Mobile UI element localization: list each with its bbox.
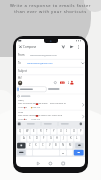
- staticText: C: [42, 143, 44, 147]
- staticText: U: [60, 129, 62, 133]
- staticText: 12:30 AM 12:30 AM: [18, 118, 41, 121]
- staticText: H: [56, 136, 58, 140]
- button[interactable]: [80, 61, 84, 65]
- button[interactable]: [17, 110, 84, 121]
- staticText: melissa.wyatt@gmail.com: [30, 54, 57, 57]
- staticText: Q: [19, 129, 22, 133]
- staticText: L: [76, 136, 78, 140]
- staticText: lauravidamu@gmail.com: [27, 62, 53, 65]
- staticText: Two quick reminders about our lunch and: [18, 114, 63, 117]
- staticText: I: [66, 129, 67, 133]
- button[interactable]: [69, 44, 75, 49]
- staticText: S: [29, 136, 31, 140]
- button[interactable]: [61, 44, 66, 49]
- staticText: Y: [53, 129, 55, 133]
- button[interactable]: [75, 143, 83, 149]
- staticText: F: [43, 136, 45, 140]
- button[interactable]: [17, 99, 84, 110]
- staticText: D: [36, 136, 38, 140]
- staticText: R: [40, 129, 42, 133]
- button[interactable]: [76, 44, 80, 49]
- staticText: Compose: [23, 45, 37, 49]
- staticText: B: [55, 143, 57, 147]
- staticText: N: [62, 143, 64, 147]
- staticText: G: [50, 136, 52, 140]
- staticText: Subject: [18, 69, 27, 73]
- button[interactable]: [33, 150, 59, 156]
- staticText: From: [18, 53, 25, 57]
- staticText: W: [26, 129, 29, 133]
- staticText: Was scrolling and saw these and thought …: [18, 102, 66, 105]
- staticText: T: [46, 129, 48, 133]
- staticText: X: [35, 143, 37, 147]
- button[interactable]: [35, 161, 41, 167]
- button[interactable]: [18, 44, 23, 49]
- staticText: Write a response to emails faster than e…: [0, 3, 101, 14]
- button[interactable]: [74, 150, 84, 156]
- staticText: M: [69, 143, 72, 147]
- button[interactable]: [17, 87, 47, 92]
- staticText: J: [63, 136, 64, 140]
- button[interactable]: [17, 143, 25, 149]
- staticText: Hi!: [18, 76, 22, 80]
- button[interactable]: [59, 161, 65, 167]
- staticText: 12:30 AM 12:30 AM: [18, 106, 41, 109]
- staticText: Angi: [18, 111, 23, 114]
- staticText: Hello,: [18, 99, 25, 102]
- button[interactable]: [47, 161, 53, 167]
- staticText: Z: [29, 143, 31, 147]
- staticText: V: [49, 143, 51, 147]
- staticText: O: [73, 129, 76, 133]
- staticText: To: [18, 61, 21, 65]
- staticText: K: [70, 136, 72, 140]
- staticText: P: [80, 129, 82, 133]
- staticText: E: [33, 129, 35, 133]
- staticText: A: [23, 136, 25, 140]
- button[interactable]: [17, 150, 25, 156]
